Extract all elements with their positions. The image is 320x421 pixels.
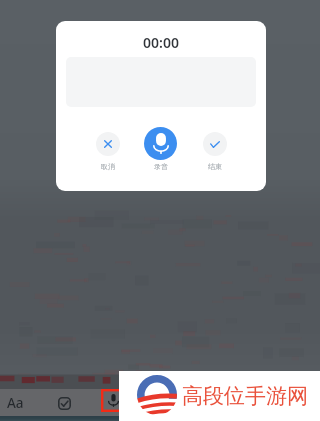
button[interactable]: 取消 — [96, 132, 120, 171]
staticText: 高段位手游网 — [182, 383, 308, 409]
button[interactable]: 录音 — [144, 127, 177, 171]
staticText: Aa — [7, 394, 24, 412]
button[interactable]: Tasks — [51, 390, 77, 416]
button[interactable]: 结束 — [203, 132, 227, 171]
button[interactable]: Voice input — [101, 389, 124, 412]
staticText: 00:00 — [56, 33, 266, 52]
staticText: 录音 — [154, 162, 168, 171]
staticText: 结束 — [208, 162, 222, 171]
staticText: 取消 — [101, 162, 115, 171]
button[interactable]: Text style — [2, 390, 28, 416]
